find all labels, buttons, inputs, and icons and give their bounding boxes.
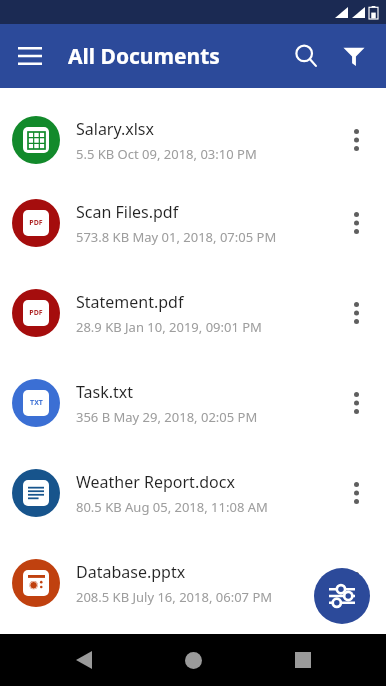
staticText: PDF — [29, 218, 43, 228]
button[interactable]: Search — [282, 32, 330, 80]
staticText: TXT — [30, 398, 43, 408]
button[interactable]: TXT — [0, 358, 386, 448]
button[interactable]: Home — [167, 634, 219, 686]
button[interactable]: More options for Database.pptx — [334, 561, 378, 605]
staticText: Statement.pdf — [76, 291, 184, 313]
button[interactable]: Back — [58, 634, 110, 686]
button[interactable]: More options for Scan Files.pdf — [334, 201, 378, 245]
staticText: Salary.xlsx — [76, 118, 155, 140]
staticText: Weather Report.docx — [76, 471, 235, 493]
staticText: 5.5 KB Oct 09, 2018, 03:10 PM — [76, 145, 257, 163]
button[interactable]: PDF — [0, 268, 386, 358]
button[interactable]: Salary.xlsx — [0, 102, 386, 178]
button[interactable]: More options for Task.txt — [334, 381, 378, 425]
button[interactable]: Recent apps — [277, 634, 329, 686]
staticText: 28.9 KB Jan 10, 2019, 09:01 PM — [76, 318, 262, 336]
button[interactable]: PDF — [0, 178, 386, 268]
button[interactable]: Filter options — [314, 568, 370, 624]
staticText: 573.8 KB May 01, 2018, 07:05 PM — [76, 228, 277, 246]
button[interactable]: Weather Report.docx — [0, 448, 386, 538]
staticText: PDF — [29, 308, 43, 318]
staticText: 80.5 KB Aug 05, 2018, 11:08 AM — [76, 498, 268, 516]
staticText: 356 B May 29, 2018, 02:05 PM — [76, 408, 258, 426]
button[interactable]: Database.pptx — [0, 538, 386, 628]
staticText: Scan Files.pdf — [76, 201, 179, 223]
staticText: Database.pptx — [76, 561, 186, 583]
button[interactable]: More options for Salary.xlsx — [334, 118, 378, 162]
staticText: 208.5 KB July 16, 2018, 06:07 PM — [76, 588, 273, 606]
staticText: All Documents — [68, 42, 282, 71]
button[interactable]: More options for Statement.pdf — [334, 291, 378, 335]
button[interactable]: Open navigation menu — [6, 32, 54, 80]
staticText: Task.txt — [76, 381, 134, 403]
button[interactable]: More options for Weather Report.docx — [334, 471, 378, 515]
button[interactable]: Filter — [330, 32, 378, 80]
